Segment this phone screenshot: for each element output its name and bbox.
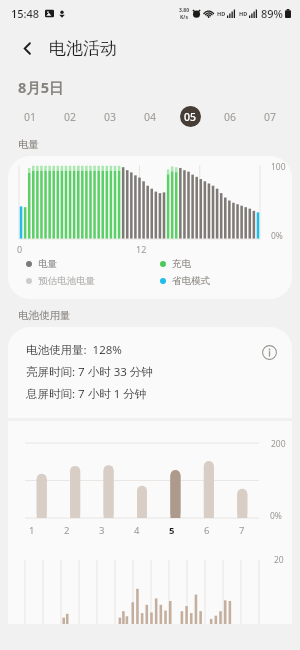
staticText: 89% [261, 6, 283, 21]
staticText: 7 [239, 524, 245, 537]
staticText: 电池使用量 [18, 309, 71, 322]
staticText: 省电模式 [172, 275, 210, 287]
staticText: 息屏时间: 7 小时 1 分钟 [26, 386, 147, 402]
staticText: 100 [271, 161, 286, 173]
staticText: 电池使用量: 128% [26, 342, 122, 358]
staticText: 电量 [38, 258, 57, 270]
staticText: 充电 [172, 258, 191, 270]
button[interactable]: 04 [130, 100, 170, 132]
staticText: 0% [270, 510, 282, 522]
staticText: 1 [29, 524, 35, 537]
staticText: 3.80 [179, 7, 189, 14]
staticText: 电量 [18, 138, 39, 151]
staticText: 15:48 [11, 6, 40, 21]
staticText: 6 [204, 524, 210, 537]
staticText: 亮屏时间: 7 小时 33 分钟 [26, 364, 153, 380]
staticText: 02 [64, 110, 77, 124]
staticText: 05 [184, 110, 197, 124]
staticText: 20 [274, 554, 284, 566]
staticText: K/s [180, 14, 188, 21]
staticText: 8月5日 [18, 77, 64, 97]
staticText: 电池活动 [49, 38, 117, 59]
staticText: 预估电池电量 [38, 275, 95, 287]
staticText: 5 [169, 524, 175, 537]
staticText: HD [239, 10, 248, 17]
button[interactable]: 05 [170, 100, 210, 132]
staticText: HD [217, 10, 226, 17]
staticText: 4 [134, 524, 140, 537]
staticText: 3 [99, 524, 105, 537]
staticText: 12 [136, 243, 147, 255]
button[interactable]: 03 [90, 100, 130, 132]
staticText: 0 [17, 243, 23, 255]
staticText: 07 [264, 110, 277, 124]
button[interactable]: Back [10, 31, 44, 65]
staticText: 2 [64, 524, 70, 537]
staticText: 0% [271, 230, 283, 242]
button[interactable]: 02 [50, 100, 90, 132]
button[interactable]: 06 [210, 100, 250, 132]
staticText: 06 [224, 110, 237, 124]
button[interactable]: Information [256, 339, 282, 365]
staticText: 200 [271, 438, 286, 450]
button[interactable]: 07 [250, 100, 290, 132]
staticText: 01 [24, 110, 37, 124]
staticText: 04 [144, 110, 157, 124]
staticText: 03 [104, 110, 117, 124]
button[interactable]: 01 [10, 100, 50, 132]
